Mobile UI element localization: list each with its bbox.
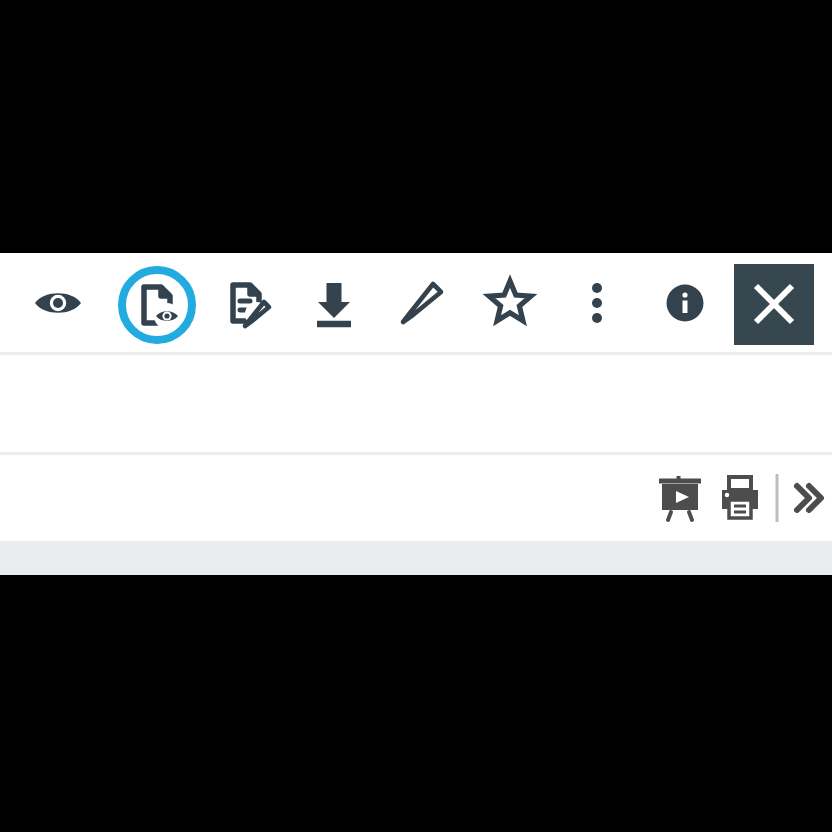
button[interactable]: Close — [734, 264, 814, 345]
button[interactable]: Edit document — [202, 258, 290, 347]
button[interactable]: Present — [652, 470, 708, 526]
button[interactable]: Add to favourites — [466, 258, 554, 347]
button[interactable]: More options — [553, 258, 641, 347]
button[interactable]: Preview document — [113, 258, 201, 347]
button[interactable]: Download — [290, 258, 378, 347]
button[interactable]: Information — [641, 258, 729, 347]
button[interactable]: Preview — [14, 258, 102, 347]
button[interactable]: Show more — [782, 470, 832, 526]
button[interactable]: Annotate — [378, 258, 466, 347]
button[interactable]: Print — [712, 470, 768, 526]
